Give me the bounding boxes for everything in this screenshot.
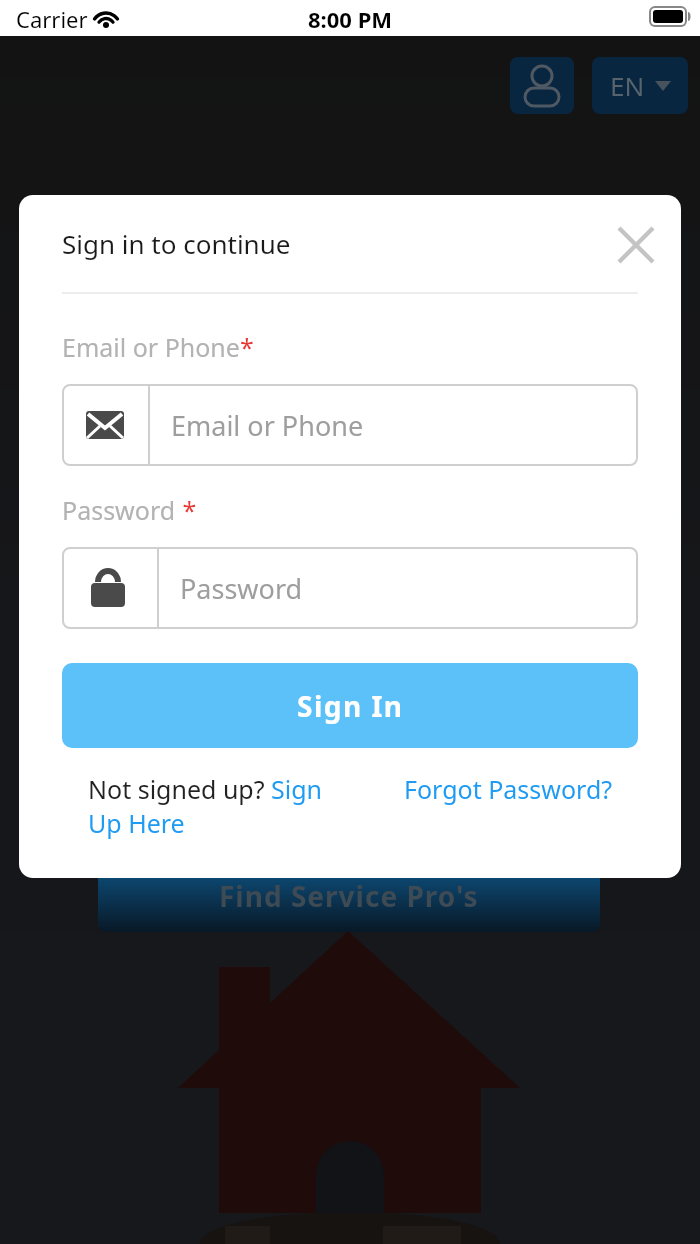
staticText: Find Service Pro's	[219, 877, 479, 915]
staticText: Email or Phone	[62, 330, 240, 364]
button[interactable]: Sign In	[62, 663, 638, 748]
staticText: Email or Phone	[171, 407, 364, 444]
button[interactable]	[510, 57, 574, 114]
button[interactable]: EN	[592, 57, 688, 114]
button[interactable]: Forgot Password?	[404, 772, 613, 806]
staticText: *	[240, 330, 254, 364]
staticText: Sign In	[297, 687, 404, 725]
button[interactable]: Not signed up? Sign Up Here	[88, 772, 323, 840]
staticText: *	[176, 493, 197, 527]
staticText: Password	[180, 570, 303, 607]
staticText: Carrier	[16, 4, 88, 34]
staticText: Forgot Password?	[404, 772, 613, 806]
staticText: EN	[610, 68, 645, 103]
button[interactable]: Find Service Pro's	[98, 850, 600, 932]
staticText: Password	[62, 493, 176, 527]
button[interactable]	[617, 226, 655, 264]
staticText: 8:00 PM	[308, 4, 393, 34]
staticText: Sign in to continue	[62, 226, 291, 261]
